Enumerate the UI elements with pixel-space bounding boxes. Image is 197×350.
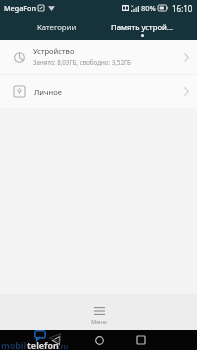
staticText: Личное bbox=[34, 87, 62, 97]
staticText: 16:10 bbox=[172, 3, 193, 14]
button[interactable]: Категории bbox=[16, 16, 97, 40]
staticText: Меню bbox=[91, 318, 107, 325]
staticText: mobil bbox=[1, 339, 27, 350]
staticText: Память устрой... bbox=[111, 22, 174, 33]
staticText: Устройство bbox=[33, 46, 75, 56]
button[interactable]: Устройство bbox=[0, 40, 197, 74]
staticText: MegaFon bbox=[4, 3, 36, 13]
button[interactable]: Recents bbox=[130, 330, 152, 350]
button[interactable]: Home bbox=[88, 330, 110, 350]
staticText: Занято: 8,03ГБ, свободно: 3,52ГБ bbox=[33, 58, 131, 66]
staticText: 80% bbox=[141, 3, 156, 13]
button[interactable]: Память устрой... bbox=[97, 16, 187, 40]
button[interactable]: Личное bbox=[0, 75, 197, 108]
staticText: Категории bbox=[37, 22, 77, 33]
button[interactable]: Back bbox=[45, 330, 67, 350]
staticText: .ru bbox=[59, 342, 68, 350]
button[interactable]: Меню bbox=[0, 294, 197, 330]
staticText: telefon bbox=[27, 339, 59, 350]
